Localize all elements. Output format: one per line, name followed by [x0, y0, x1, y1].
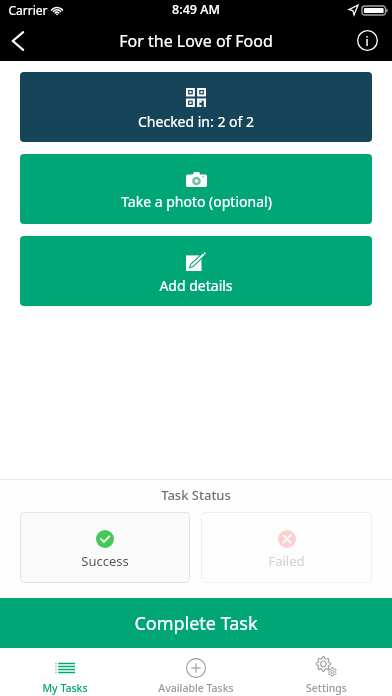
staticText: 8:49 AM [172, 1, 220, 18]
button[interactable]: Checked in: 2 of 2 [20, 72, 372, 142]
staticText: Available Tasks [158, 681, 234, 695]
button[interactable]: Available Tasks [130, 648, 261, 696]
staticText: My Tasks [42, 681, 88, 695]
staticText: Task Status [161, 486, 231, 504]
staticText: Settings [306, 681, 347, 695]
button[interactable]: Take a photo (optional) [20, 154, 372, 224]
staticText: Failed [268, 552, 305, 570]
button[interactable]: Complete Task [0, 598, 392, 648]
staticText: Complete Task [134, 611, 258, 636]
button[interactable]: Add details [20, 236, 372, 306]
staticText: Add details [159, 276, 233, 295]
staticText: Take a photo (optional) [121, 192, 272, 211]
button[interactable]: Failed [201, 512, 372, 583]
button[interactable]: Info [352, 20, 392, 61]
button[interactable]: Back [0, 20, 40, 61]
button[interactable]: Success [20, 512, 190, 583]
staticText: Success [81, 552, 129, 570]
staticText: Carrier [8, 2, 48, 18]
staticText: i [365, 33, 369, 49]
staticText: Checked in: 2 of 2 [138, 112, 254, 131]
staticText: For the Love of Food [119, 30, 273, 52]
button[interactable]: Settings [261, 648, 392, 696]
button[interactable]: My Tasks [0, 648, 130, 696]
